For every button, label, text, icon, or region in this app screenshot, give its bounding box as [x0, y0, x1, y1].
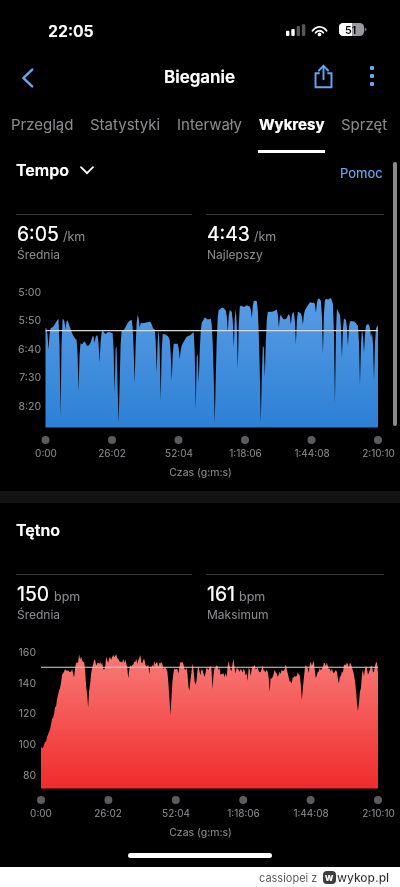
button[interactable]: Statystyki [86, 104, 165, 144]
staticText: 100 [18, 738, 36, 751]
staticText: 0:00 [35, 447, 57, 459]
button[interactable]: Share [303, 56, 343, 96]
button[interactable]: Interwały [173, 104, 247, 144]
button[interactable]: Pomoc [340, 165, 383, 181]
staticText: 26:02 [98, 447, 126, 459]
staticText: wykop.pl [337, 870, 390, 885]
staticText: Interwały [177, 115, 243, 133]
staticText: 1:44:08 [293, 807, 329, 819]
staticText: bpm [239, 589, 266, 604]
staticText: 6:05 [17, 222, 59, 246]
staticText: Przegląd [11, 115, 74, 133]
button[interactable]: Przegląd [7, 104, 78, 144]
staticText: 22:05 [48, 21, 94, 40]
staticText: 120 [18, 707, 36, 720]
staticText: 140 [18, 677, 36, 690]
staticText: 1:44:08 [294, 447, 330, 459]
staticText: Maksimum [207, 607, 269, 622]
staticText: 5:50 [18, 314, 41, 327]
staticText: 5:00 [18, 286, 41, 299]
staticText: 80 [22, 769, 36, 782]
staticText: 161 [207, 582, 235, 606]
staticText: 7:30 [19, 371, 41, 384]
staticText: 1:18:06 [227, 807, 260, 819]
button[interactable]: Tętno [16, 520, 60, 539]
staticText: 150 [17, 582, 50, 606]
button[interactable]: Back [6, 56, 50, 100]
staticText: 26:02 [94, 807, 122, 819]
staticText: 0:00 [30, 807, 52, 819]
staticText: Czas (g:m:s) [169, 826, 232, 839]
staticText: Średnia [17, 247, 61, 262]
staticText: Najlepszy [207, 247, 263, 262]
staticText: 1:18:06 [229, 447, 262, 459]
staticText: 8:20 [18, 400, 41, 413]
staticText: Tempo [16, 160, 69, 179]
staticText: 2:10:10 [362, 807, 395, 819]
staticText: Czas (g:m:s) [169, 466, 232, 479]
button[interactable]: Wykresy [255, 104, 329, 144]
staticText: 51 [345, 24, 357, 37]
staticText: /km [63, 229, 86, 244]
staticText: cassiopei z [259, 871, 318, 884]
staticText: Statystyki [90, 115, 161, 133]
staticText: Tętno [16, 520, 60, 539]
staticText: Sprzęt [341, 115, 388, 133]
staticText: bpm [54, 589, 81, 604]
staticText: 160 [18, 646, 36, 659]
staticText: 6:40 [18, 343, 41, 356]
button[interactable]: Sprzęt [337, 104, 392, 144]
staticText: Średnia [17, 607, 61, 622]
staticText: 52:04 [162, 807, 190, 819]
staticText: 52:04 [165, 447, 193, 459]
staticText: 4:43 [207, 222, 250, 246]
staticText: Bieganie [164, 67, 236, 88]
staticText: Wykresy [259, 115, 325, 133]
button[interactable]: More options [352, 56, 392, 96]
staticText: W [325, 873, 334, 883]
staticText: /km [254, 229, 277, 244]
button[interactable]: Tempo [16, 160, 93, 179]
staticText: 2:10:10 [362, 447, 395, 459]
